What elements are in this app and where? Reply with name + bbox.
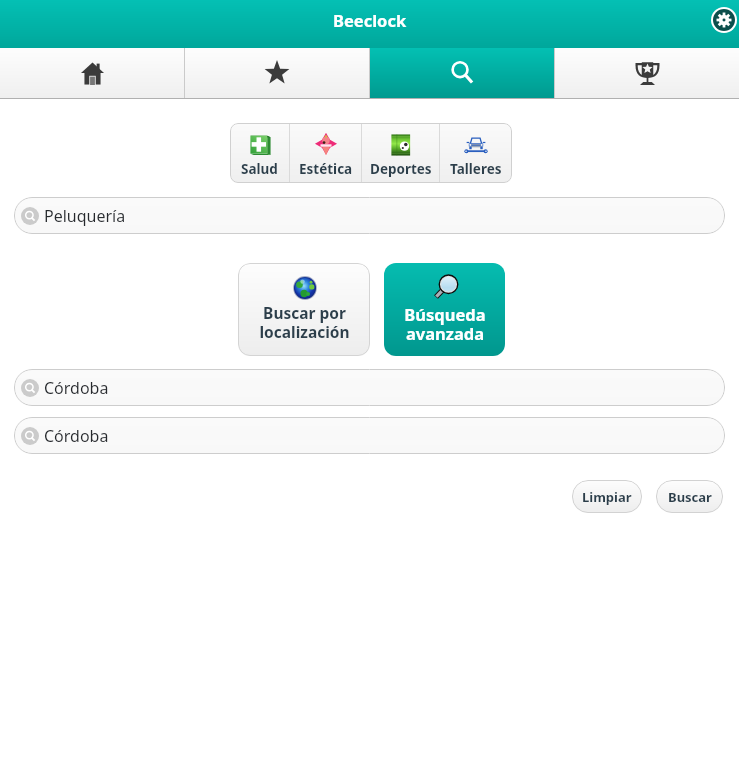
button[interactable]: Salud [230, 123, 289, 183]
staticText: Talleres [450, 160, 502, 178]
staticText: Córdoba [44, 425, 109, 447]
button[interactable]: Search [370, 48, 554, 98]
button[interactable]: Limpiar [572, 480, 642, 513]
button[interactable]: Home [0, 48, 184, 98]
button[interactable]: Deportes [362, 123, 439, 183]
button[interactable]: Favourites [185, 48, 369, 98]
button[interactable]: Córdoba [14, 417, 725, 454]
staticText: Deportes [370, 160, 432, 178]
staticText: Limpiar [582, 488, 632, 506]
staticText: Búsqueda avanzada [404, 303, 486, 345]
button[interactable]: Settings [710, 6, 738, 34]
button[interactable]: Talleres [440, 123, 511, 183]
staticText: Beeclock [333, 9, 407, 31]
button[interactable]: Córdoba [14, 369, 725, 406]
button[interactable]: Rankings [555, 48, 739, 98]
button[interactable]: Búsqueda avanzada [384, 263, 505, 356]
button[interactable]: Peluquería [14, 197, 725, 234]
staticText: Buscar por localización [259, 302, 350, 342]
button[interactable]: Buscar por localización [238, 263, 370, 356]
staticText: Estética [299, 160, 353, 178]
staticText: Córdoba [44, 377, 109, 399]
staticText: Salud [241, 160, 278, 178]
button[interactable]: Estética [290, 123, 361, 183]
staticText: Buscar [668, 488, 712, 506]
button[interactable]: Buscar [656, 480, 723, 513]
staticText: Peluquería [44, 205, 126, 227]
